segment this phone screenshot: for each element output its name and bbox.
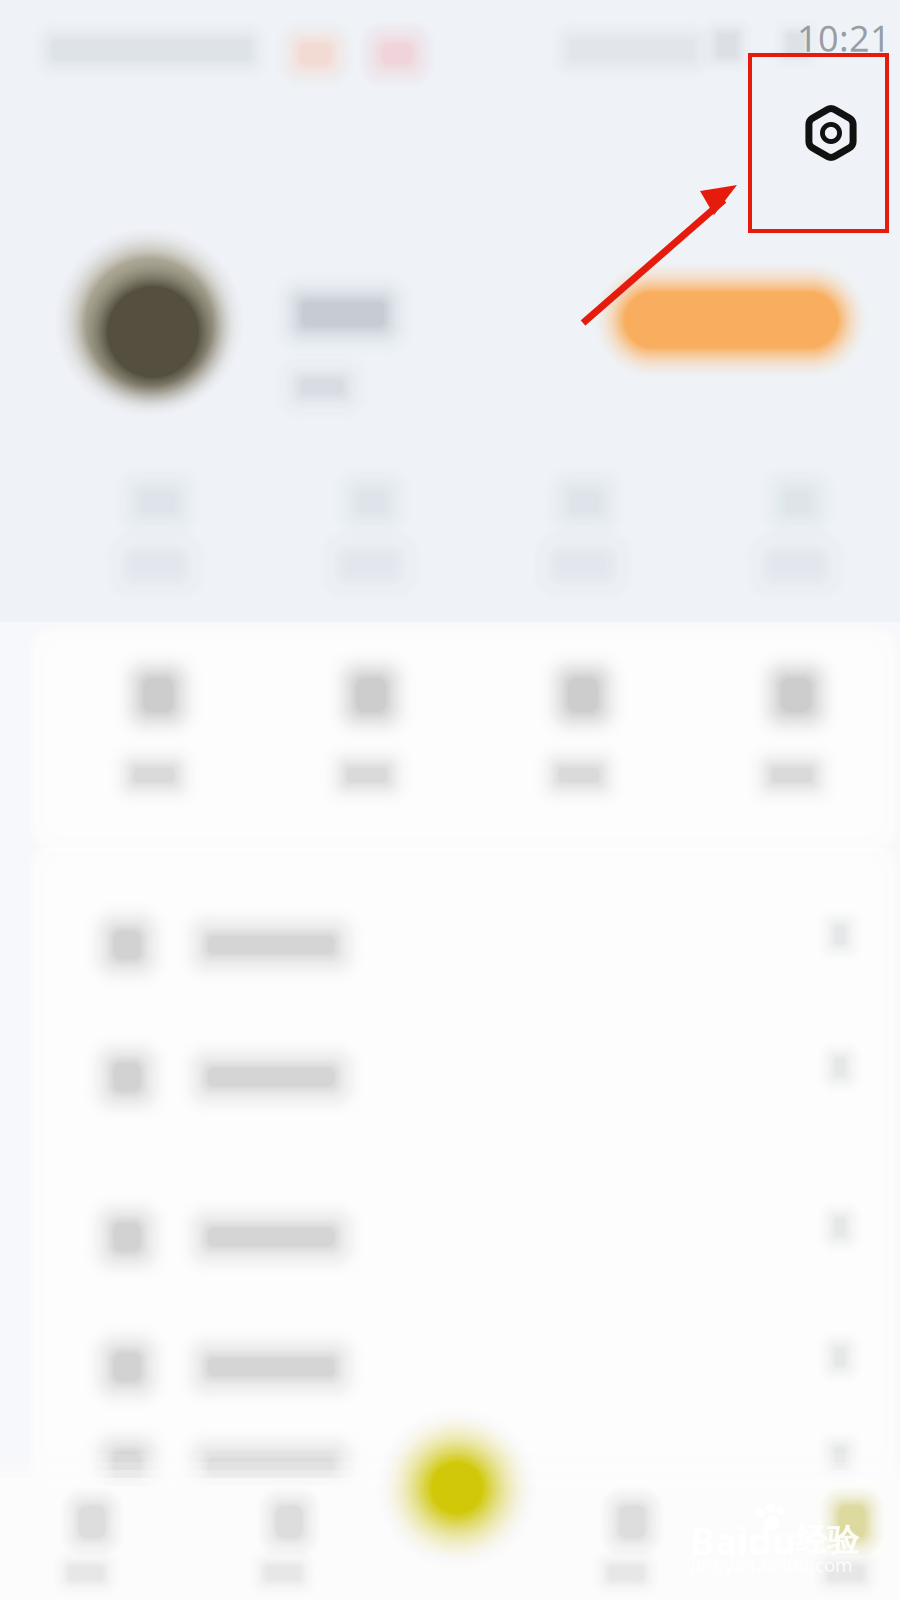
button[interactable]: Settings [750, 55, 887, 231]
staticText: 10:21 [797, 14, 891, 62]
button[interactable]: Create [0, 0, 160, 160]
button[interactable]: Messages [0, 0, 74, 80]
button[interactable]: Me [0, 0, 74, 80]
staticText: 经验 [795, 1521, 859, 1560]
button[interactable]: Discover [0, 0, 74, 80]
button[interactable]: Home [0, 0, 74, 80]
staticText: jingyan.baidu.com [691, 1552, 852, 1577]
